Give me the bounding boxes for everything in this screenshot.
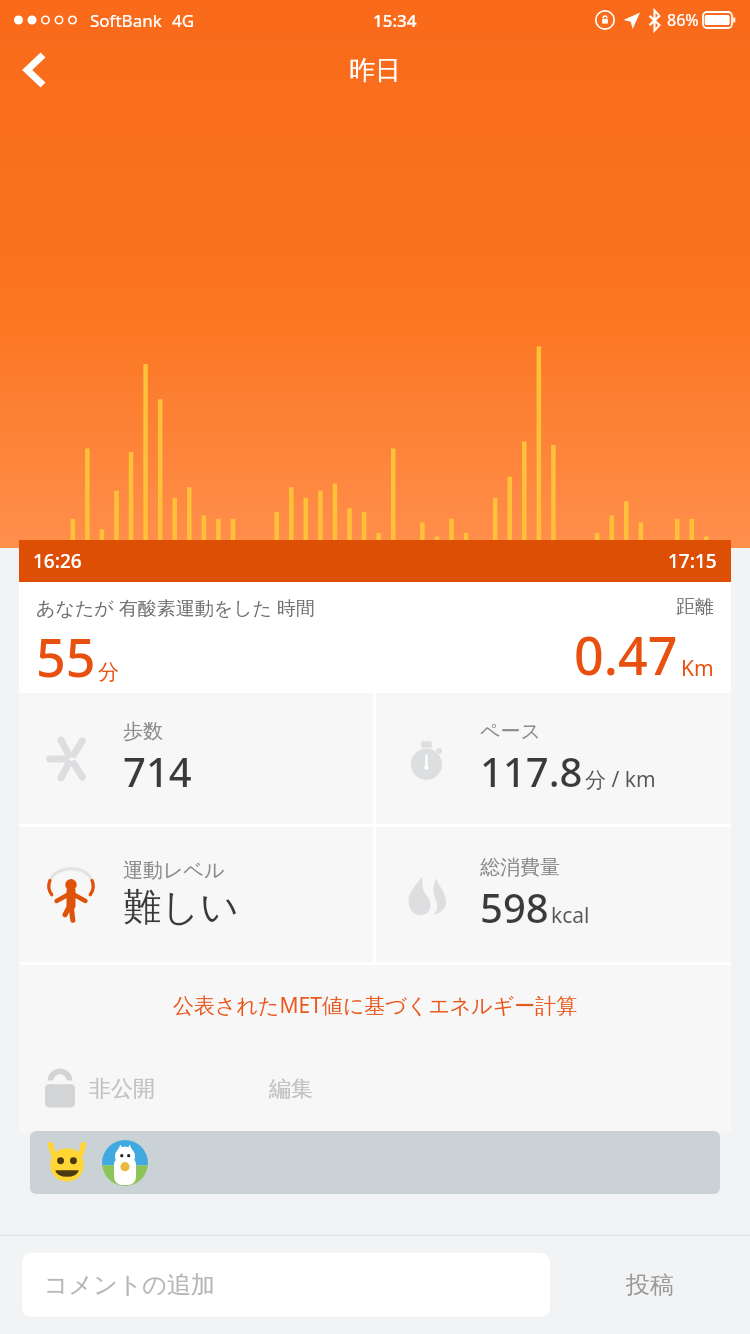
button[interactable]: Sticker <box>102 1140 148 1186</box>
staticText: コメントの追加 <box>44 1270 215 1300</box>
button[interactable]: 投稿 <box>550 1235 750 1334</box>
staticText: 運動レベル <box>123 858 225 883</box>
staticText: 17:15 <box>668 548 717 574</box>
staticText: 598 <box>480 880 549 934</box>
staticText: 分 <box>98 659 119 685</box>
staticText: 非公開 <box>89 1075 155 1103</box>
button[interactable]: コメントの追加 <box>22 1253 550 1317</box>
staticText: 公表されたMET値に基づくエネルギー計算 <box>173 991 578 1020</box>
button[interactable]: Sticker <box>44 1140 90 1186</box>
button[interactable]: 総消費量 <box>376 827 731 962</box>
staticText: 0.47 <box>574 619 678 690</box>
staticText: 編集 <box>269 1075 313 1103</box>
staticText: 投稿 <box>626 1270 674 1300</box>
button[interactable]: 非公開 <box>35 1061 163 1117</box>
button[interactable]: 編集 <box>259 1067 323 1111</box>
staticText: 分 / km <box>585 765 656 794</box>
button[interactable]: 歩数 <box>19 693 373 824</box>
staticText: 55 <box>36 621 96 691</box>
staticText: あなたが 有酸素運動をした 時間 <box>36 595 315 621</box>
staticText: 難しい <box>123 883 239 931</box>
button[interactable]: Back <box>8 42 64 98</box>
staticText: 117.8 <box>480 744 583 798</box>
button[interactable]: 運動レベル <box>19 827 373 962</box>
staticText: 昨日 <box>349 54 401 87</box>
staticText: 15:34 <box>373 9 417 32</box>
staticText: 86% <box>667 9 699 31</box>
staticText: Km <box>681 654 714 683</box>
staticText: kcal <box>551 901 590 930</box>
staticText: 距離 <box>676 595 714 619</box>
staticText: SoftBank <box>90 9 162 32</box>
staticText: 16:26 <box>33 548 82 574</box>
staticText: 4G <box>172 9 195 32</box>
staticText: ペース <box>480 719 541 744</box>
staticText: 総消費量 <box>480 855 560 880</box>
button[interactable]: ペース <box>376 693 731 824</box>
staticText: 714 <box>123 744 192 798</box>
staticText: 歩数 <box>123 719 163 744</box>
